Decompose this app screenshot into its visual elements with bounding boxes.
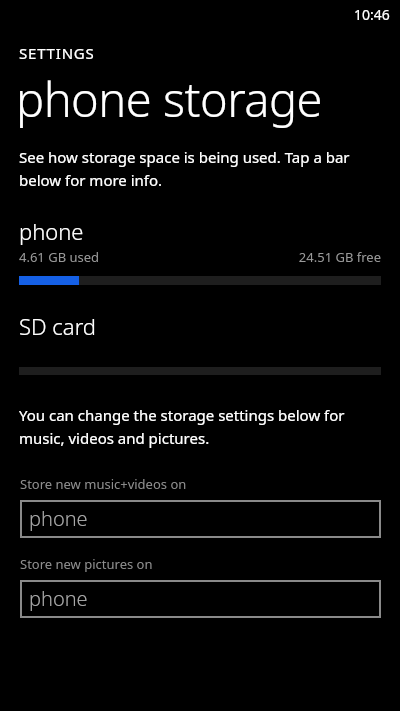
button[interactable]: SD card	[0, 311, 400, 375]
staticText: SETTINGS	[19, 43, 95, 63]
staticText: You can change the storage settings belo…	[19, 405, 382, 448]
button[interactable]: phone	[0, 216, 400, 285]
staticText: 10:46	[354, 5, 390, 24]
staticText: Store new pictures on	[20, 555, 153, 573]
staticText: Store new music+videos on	[20, 475, 187, 493]
button[interactable]: phone	[20, 580, 381, 618]
staticText: 24.51 GB free	[298, 248, 381, 266]
staticText: See how storage space is being used. Tap…	[19, 147, 382, 190]
staticText: phone	[29, 505, 88, 532]
staticText: 4.61 GB used	[19, 248, 100, 266]
staticText: phone	[19, 216, 84, 246]
staticText: SD card	[19, 311, 97, 341]
staticText: phone	[29, 585, 88, 612]
staticText: phone storage	[16, 67, 323, 131]
button[interactable]: phone	[20, 500, 381, 538]
